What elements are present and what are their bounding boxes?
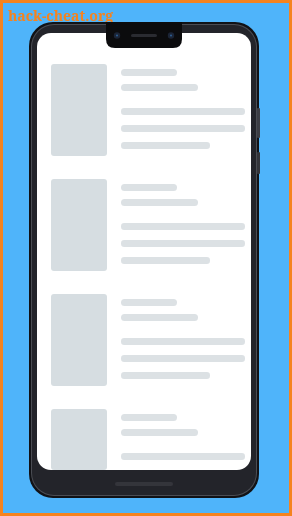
staticText: hack-cheat.org [8,6,114,25]
button[interactable] [37,56,251,171]
other: Volume [257,152,260,174]
button[interactable] [37,401,251,470]
button[interactable] [37,286,251,401]
button[interactable] [37,171,251,286]
other: Power button [257,108,260,138]
